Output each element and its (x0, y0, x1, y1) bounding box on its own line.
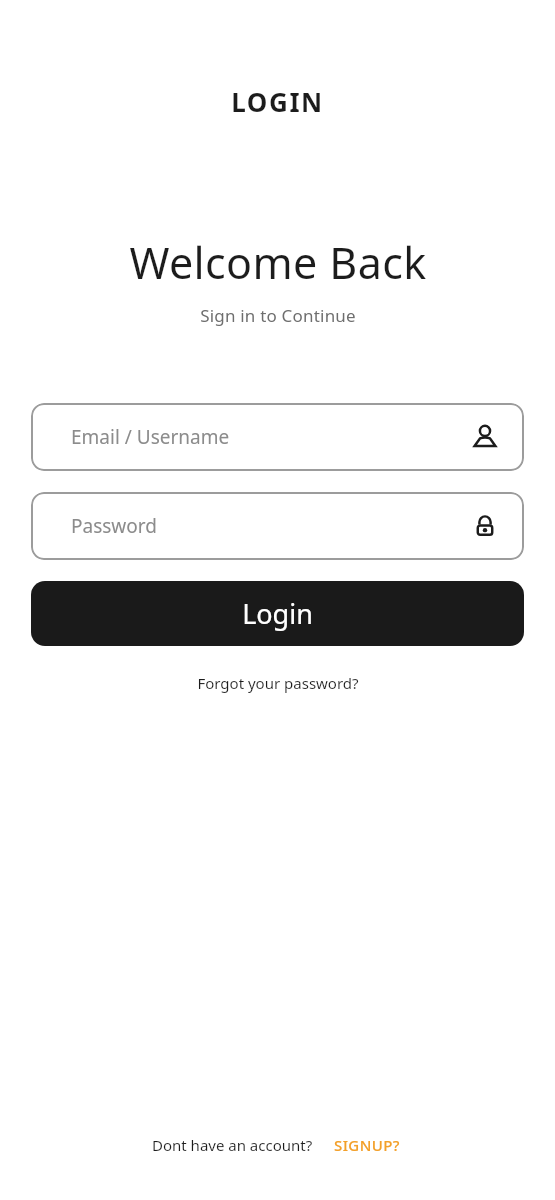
staticText: Dont have an account? (152, 1135, 313, 1155)
button[interactable]: SIGNUP? (331, 1132, 403, 1158)
staticText: Email / Username (71, 424, 472, 450)
button[interactable]: Email / Username (31, 403, 524, 471)
other: Password (472, 513, 498, 539)
button[interactable]: Login (31, 581, 524, 646)
other: Username (472, 424, 498, 450)
button[interactable]: Password (31, 492, 524, 560)
staticText: Welcome Back (129, 233, 427, 292)
staticText: Forgot your password? (197, 673, 359, 693)
staticText: LOGIN (231, 84, 324, 119)
staticText: Password (71, 513, 472, 539)
staticText: Sign in to Continue (200, 304, 356, 327)
staticText: SIGNUP? (334, 1135, 400, 1155)
button[interactable]: Forgot your password? (187, 669, 369, 697)
staticText: Login (242, 595, 313, 632)
